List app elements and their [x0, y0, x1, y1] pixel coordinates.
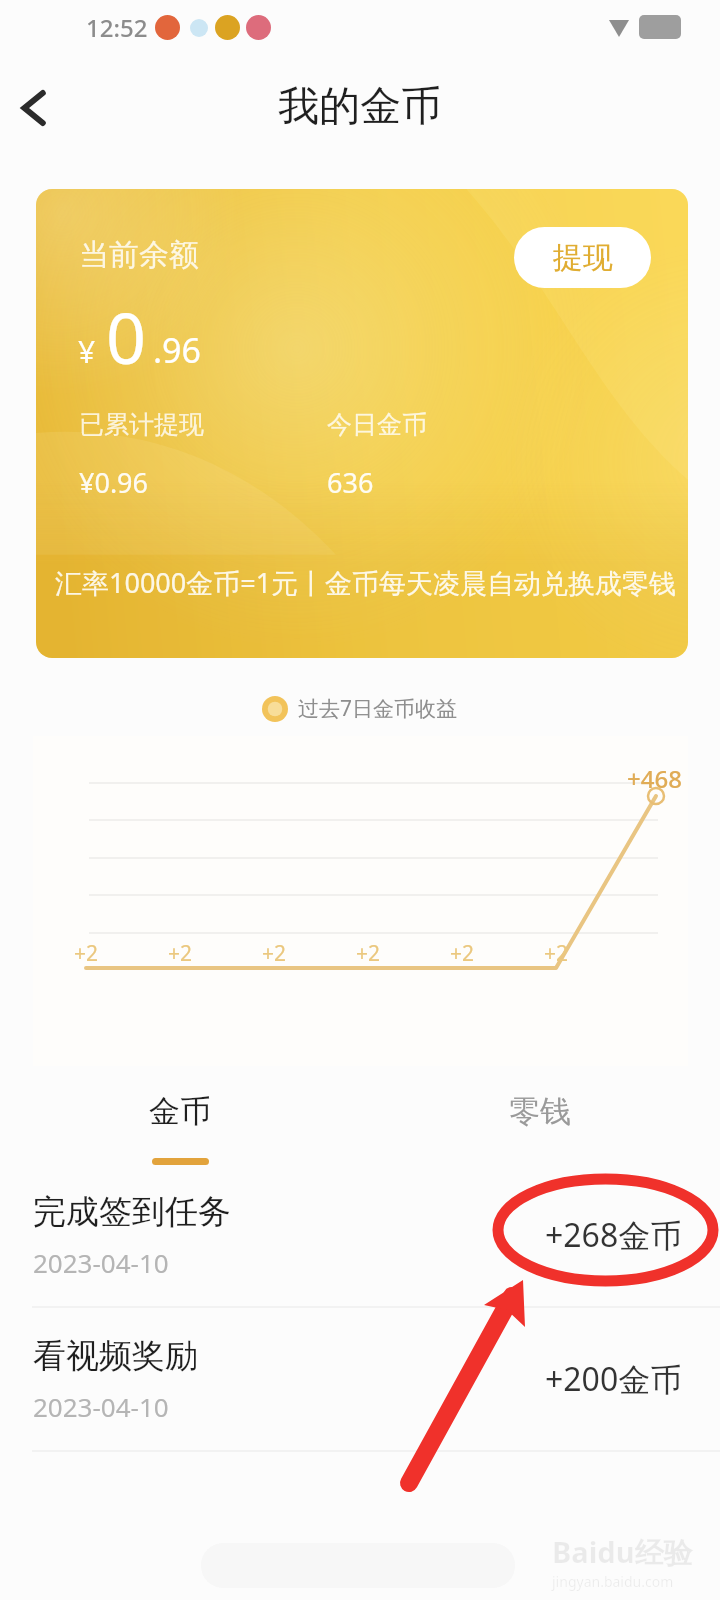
staticText: 今日金币 — [327, 409, 427, 440]
staticText: +2 — [450, 939, 475, 968]
staticText: 金币 — [149, 1092, 211, 1131]
staticText: 0 — [106, 289, 147, 384]
staticText: +2 — [356, 939, 381, 968]
staticText: 2023-04-10 — [33, 1389, 169, 1424]
staticText: +2 — [74, 939, 99, 968]
staticText: 2023-04-10 — [33, 1245, 169, 1280]
staticText: 12:52 — [86, 11, 148, 44]
button[interactable]: 金币 — [0, 1078, 360, 1166]
staticText: Baidu经验 — [552, 1532, 693, 1572]
staticText: 完成签到任务 — [33, 1191, 231, 1233]
staticText: 汇率10000金币=1元丨金币每天凌晨自动兑换成零钱 — [55, 564, 677, 601]
staticText: 已累计提现 — [79, 409, 204, 440]
staticText: jingyan.baidu.com — [552, 1572, 674, 1591]
button[interactable]: 完成签到任务 — [0, 1164, 720, 1306]
staticText: 过去7日金币收益 — [298, 694, 458, 723]
staticText: +200金币 — [545, 1357, 683, 1401]
staticText: 零钱 — [509, 1092, 571, 1131]
staticText: .96 — [153, 327, 202, 373]
staticText: ¥ — [78, 331, 96, 372]
staticText: 636 — [327, 464, 374, 501]
staticText: ¥0.96 — [79, 464, 149, 501]
staticText: 我的金币 — [278, 81, 442, 133]
staticText: +2 — [168, 939, 193, 968]
staticText: +2 — [262, 939, 287, 968]
staticText: 看视频奖励 — [33, 1335, 198, 1377]
staticText: 当前余额 — [79, 236, 199, 274]
button[interactable]: Back — [6, 78, 66, 138]
button[interactable]: 提现 — [514, 227, 651, 288]
staticText: +2 — [544, 939, 569, 968]
button[interactable]: 看视频奖励 — [0, 1308, 720, 1450]
button[interactable]: 零钱 — [360, 1078, 720, 1166]
staticText: +468 — [627, 762, 682, 795]
staticText: 提现 — [553, 239, 613, 277]
staticText: +268金币 — [545, 1213, 683, 1257]
